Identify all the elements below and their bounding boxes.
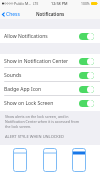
button[interactable]: Badge App Icon — [0, 82, 100, 96]
button[interactable]: Chess — [2, 11, 20, 18]
button[interactable]: Show on Lock Screen — [0, 96, 100, 111]
staticText: 100% — [81, 1, 90, 6]
button[interactable]: Alerts alert style — [72, 148, 86, 172]
staticText: Show on Lock Screen — [4, 100, 54, 107]
staticText: Show alerts on the lock screen, and in N… — [5, 114, 80, 129]
button[interactable]: Banners alert style — [43, 148, 57, 172]
staticText: 12:58 PM — [51, 1, 68, 6]
staticText: Sounds — [4, 72, 22, 79]
staticText: Badge App Icon — [4, 86, 42, 93]
button[interactable]: Toggle switch on — [79, 58, 94, 65]
button[interactable]: Toggle switch on — [79, 72, 94, 79]
button[interactable]: None alert style — [13, 148, 27, 172]
button[interactable]: Sounds — [0, 68, 100, 82]
button[interactable]: Show in Notification Center — [0, 54, 100, 68]
button[interactable]: Toggle switch on — [79, 86, 94, 93]
staticText: Public M... — [14, 1, 32, 6]
staticText: Show in Notification Center — [4, 58, 69, 65]
staticText: LTE — [33, 2, 39, 6]
button[interactable]: Toggle switch on — [79, 33, 94, 40]
staticText: Chess — [6, 11, 20, 18]
staticText: Allow Notifications — [4, 33, 48, 40]
staticText: Notifications — [36, 11, 65, 17]
button[interactable]: Allow Notifications — [0, 29, 100, 43]
staticText: ALERT STYLE WHEN UNLOCKED — [5, 134, 64, 139]
button[interactable]: Toggle switch on — [79, 100, 94, 107]
